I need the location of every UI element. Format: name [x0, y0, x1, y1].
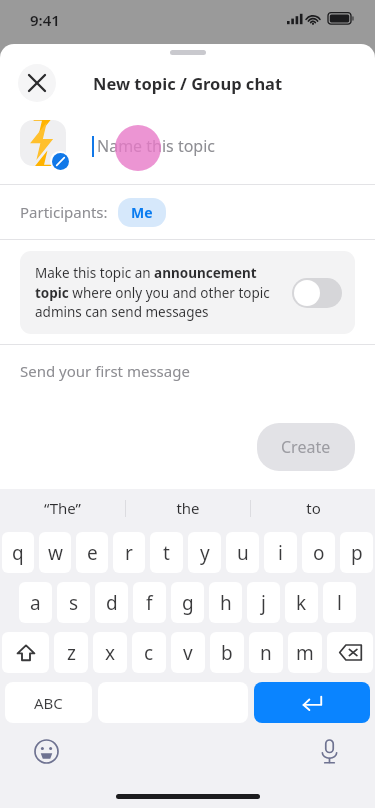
staticText: u — [237, 540, 249, 566]
button[interactable]: z — [54, 632, 88, 673]
button[interactable]: Make this topic an announcement topic wh… — [20, 251, 355, 334]
staticText: p — [351, 540, 363, 566]
button[interactable]: t — [150, 532, 183, 573]
button[interactable]: f — [133, 582, 166, 623]
staticText: c — [144, 640, 154, 666]
staticText: v — [183, 640, 193, 666]
button[interactable]: w — [39, 532, 71, 573]
staticText: f — [146, 590, 153, 616]
staticText: r — [125, 540, 133, 566]
button[interactable]: Shift — [2, 632, 49, 673]
button[interactable]: c — [132, 632, 166, 673]
staticText: Me — [131, 203, 153, 222]
staticText: New topic / Group chat — [93, 72, 283, 94]
button[interactable]: Name this topic — [0, 108, 375, 184]
staticText: s — [69, 590, 79, 616]
button[interactable]: e — [76, 532, 108, 573]
staticText: Name this topic — [97, 135, 216, 157]
button[interactable]: Me — [118, 198, 166, 227]
staticText: to — [306, 498, 321, 518]
staticText: 9:41 — [30, 10, 60, 30]
button[interactable]: i — [264, 532, 297, 573]
button[interactable]: ABC — [5, 682, 92, 723]
button[interactable]: Announcement topic toggle — [292, 278, 342, 308]
staticText: b — [221, 640, 233, 666]
staticText: d — [106, 590, 118, 616]
button[interactable]: Backspace — [327, 632, 373, 673]
staticText: g — [182, 590, 194, 616]
staticText: n — [260, 640, 272, 666]
button[interactable]: Create — [257, 423, 355, 471]
button[interactable]: x — [93, 632, 127, 673]
staticText: the — [176, 498, 200, 518]
staticText: i — [278, 540, 283, 566]
staticText: x — [105, 640, 116, 666]
button[interactable]: n — [249, 632, 283, 673]
staticText: o — [313, 540, 325, 566]
staticText: k — [296, 590, 307, 616]
staticText: a — [30, 590, 41, 616]
button[interactable]: Emoji — [30, 735, 62, 767]
button[interactable]: h — [209, 582, 242, 623]
button[interactable]: y — [188, 532, 221, 573]
button[interactable]: the — [126, 489, 250, 527]
staticText: Send your first message — [20, 361, 190, 381]
staticText: w — [48, 540, 63, 566]
button[interactable]: r — [113, 532, 145, 573]
button[interactable]: b — [210, 632, 244, 673]
staticText: t — [163, 540, 170, 566]
button[interactable]: k — [285, 582, 318, 623]
button[interactable]: Close — [18, 64, 56, 102]
staticText: e — [87, 540, 98, 566]
staticText: q — [12, 540, 24, 566]
button[interactable]: Participants: — [0, 185, 375, 239]
button[interactable]: s — [57, 582, 90, 623]
button[interactable]: u — [226, 532, 259, 573]
button[interactable]: q — [2, 532, 34, 573]
button[interactable]: p — [340, 532, 373, 573]
button[interactable]: Send your first message — [0, 345, 375, 397]
staticText: Create — [281, 436, 331, 458]
button[interactable]: m — [288, 632, 322, 673]
staticText: Participants: — [20, 202, 108, 222]
staticText: l — [337, 590, 342, 616]
staticText: y — [200, 540, 210, 566]
button[interactable]: l — [323, 582, 356, 623]
button[interactable]: g — [171, 582, 204, 623]
button[interactable]: o — [302, 532, 335, 573]
staticText: ABC — [34, 693, 63, 713]
button[interactable]: a — [19, 582, 52, 623]
button[interactable]: “The” — [0, 489, 125, 527]
staticText: “The” — [44, 498, 81, 518]
button[interactable]: Dictate — [313, 735, 345, 767]
button[interactable]: d — [95, 582, 128, 623]
staticText: m — [296, 640, 314, 666]
button[interactable]: v — [171, 632, 205, 673]
staticText: Make this topic an announcement topic wh… — [35, 264, 282, 321]
staticText: h — [220, 590, 232, 616]
button[interactable]: Enter — [254, 682, 370, 723]
staticText: j — [261, 590, 266, 616]
staticText: z — [67, 640, 76, 666]
button[interactable]: j — [247, 582, 280, 623]
button[interactable]: to — [251, 489, 375, 527]
